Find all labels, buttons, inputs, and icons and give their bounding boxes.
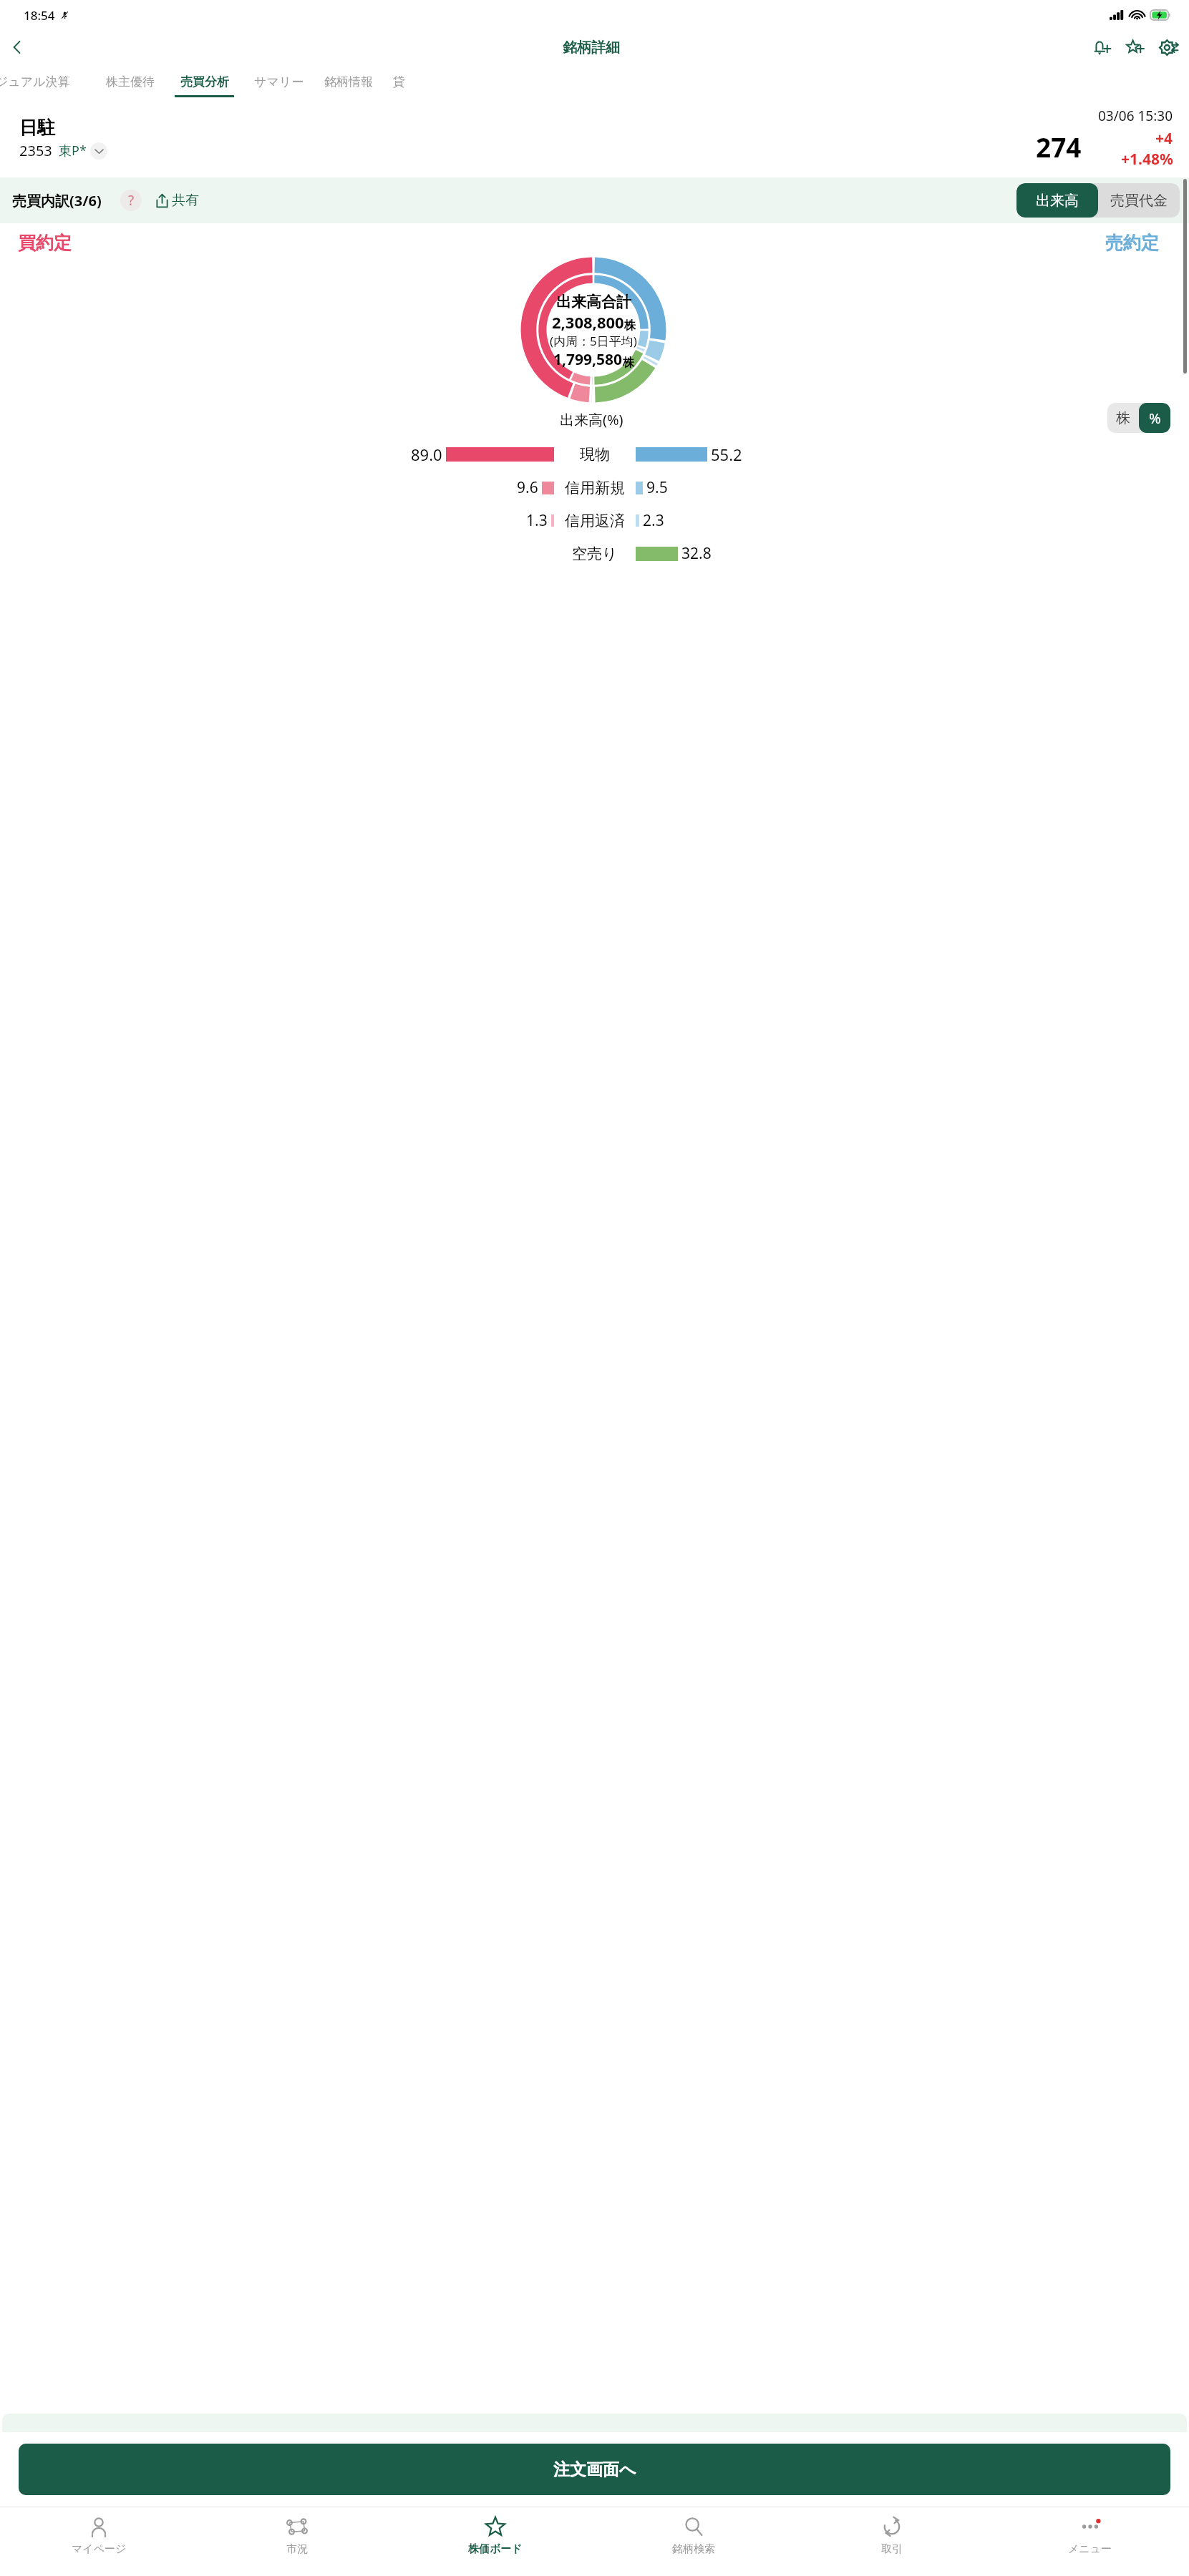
staticText: 銘柄検索 <box>672 2542 715 2556</box>
staticText: 出来高(%) <box>560 410 623 429</box>
staticText: 銘柄詳細 <box>563 39 620 57</box>
staticText: 03/06 15:30 <box>1098 107 1173 125</box>
button[interactable]: サマリー <box>244 64 314 99</box>
button[interactable]: Expand <box>90 142 107 160</box>
staticText: 貸 <box>393 74 405 89</box>
staticText: % <box>1149 409 1161 428</box>
button[interactable]: Help <box>120 190 142 211</box>
staticText: 274 <box>1036 129 1082 165</box>
staticText: 東P* <box>59 142 87 160</box>
staticText: 18:54 <box>24 7 55 24</box>
button[interactable]: 注文画面へ <box>19 2444 1170 2495</box>
staticText: 売買代金 <box>1110 192 1168 210</box>
staticText: 9.6 <box>517 477 538 498</box>
staticText: 55.2 <box>711 444 742 465</box>
staticText: 株価ボード <box>468 2542 523 2556</box>
button[interactable]: 売買代金 <box>1098 183 1180 218</box>
staticText: 買約定 <box>18 232 72 254</box>
staticText: 出来高 <box>1036 192 1079 210</box>
staticText: +4 <box>1155 128 1173 149</box>
button[interactable]: 株主優待 <box>96 64 165 99</box>
staticText: 2,308,800 <box>552 311 624 333</box>
staticText: ジュアル決算 <box>0 74 70 89</box>
staticText: 銘柄情報 <box>324 74 373 89</box>
staticText: 株 <box>1116 409 1130 427</box>
button[interactable]: メニュー <box>991 2507 1189 2576</box>
button[interactable]: Back <box>0 30 34 64</box>
button[interactable]: 貸 <box>383 64 415 99</box>
staticText: マイページ <box>72 2542 127 2556</box>
button[interactable]: % <box>1139 403 1170 433</box>
staticText: 株 <box>624 318 636 333</box>
staticText: 売買分析 <box>180 74 229 89</box>
staticText: 日駐 <box>19 117 55 139</box>
staticText: +1.48% <box>1121 149 1173 170</box>
staticText: サマリー <box>254 74 304 89</box>
button[interactable]: 株価ボード <box>396 2507 594 2576</box>
button[interactable]: 銘柄検索 <box>594 2507 792 2576</box>
button[interactable]: Settings <box>1152 31 1185 64</box>
button[interactable]: 共有 <box>152 189 202 212</box>
staticText: 89.0 <box>411 444 442 465</box>
staticText: 株 <box>623 356 634 370</box>
staticText: 信用返済 <box>565 512 625 530</box>
staticText: 1,799,580 <box>553 349 623 370</box>
staticText: 2353 <box>19 141 52 160</box>
button[interactable]: 売買分析 <box>165 64 244 99</box>
staticText: 市況 <box>286 2542 308 2556</box>
button[interactable]: Add favourite <box>1119 31 1152 64</box>
staticText: 売約定 <box>1105 232 1159 254</box>
staticText: 1.3 <box>526 510 548 531</box>
staticText: 売買内訳(3/6) <box>12 191 102 210</box>
staticText: 空売り <box>572 545 618 563</box>
staticText: (内周：5日平均) <box>550 333 637 349</box>
staticText: 出来高合計 <box>556 293 631 311</box>
staticText: 注文画面へ <box>553 2459 636 2480</box>
staticText: 取引 <box>881 2542 903 2556</box>
staticText: 現物 <box>580 445 610 464</box>
button[interactable]: マイページ <box>0 2507 198 2576</box>
button[interactable]: 市況 <box>198 2507 396 2576</box>
button[interactable]: 株 <box>1107 403 1139 433</box>
staticText: 信用新規 <box>565 479 625 497</box>
button[interactable]: 銘柄情報 <box>314 64 383 99</box>
staticText: 株主優待 <box>106 74 155 89</box>
button[interactable]: 取引 <box>792 2507 991 2576</box>
staticText: 2.3 <box>643 510 664 531</box>
staticText: メニュー <box>1068 2542 1112 2556</box>
staticText: 32.8 <box>681 543 712 564</box>
button[interactable]: ジュアル決算 <box>0 64 80 99</box>
staticText: ? <box>128 191 135 210</box>
button[interactable]: 出来高 <box>1016 183 1098 218</box>
button[interactable]: Add alert <box>1086 31 1119 64</box>
staticText: 共有 <box>172 192 199 209</box>
staticText: 9.5 <box>646 477 668 498</box>
